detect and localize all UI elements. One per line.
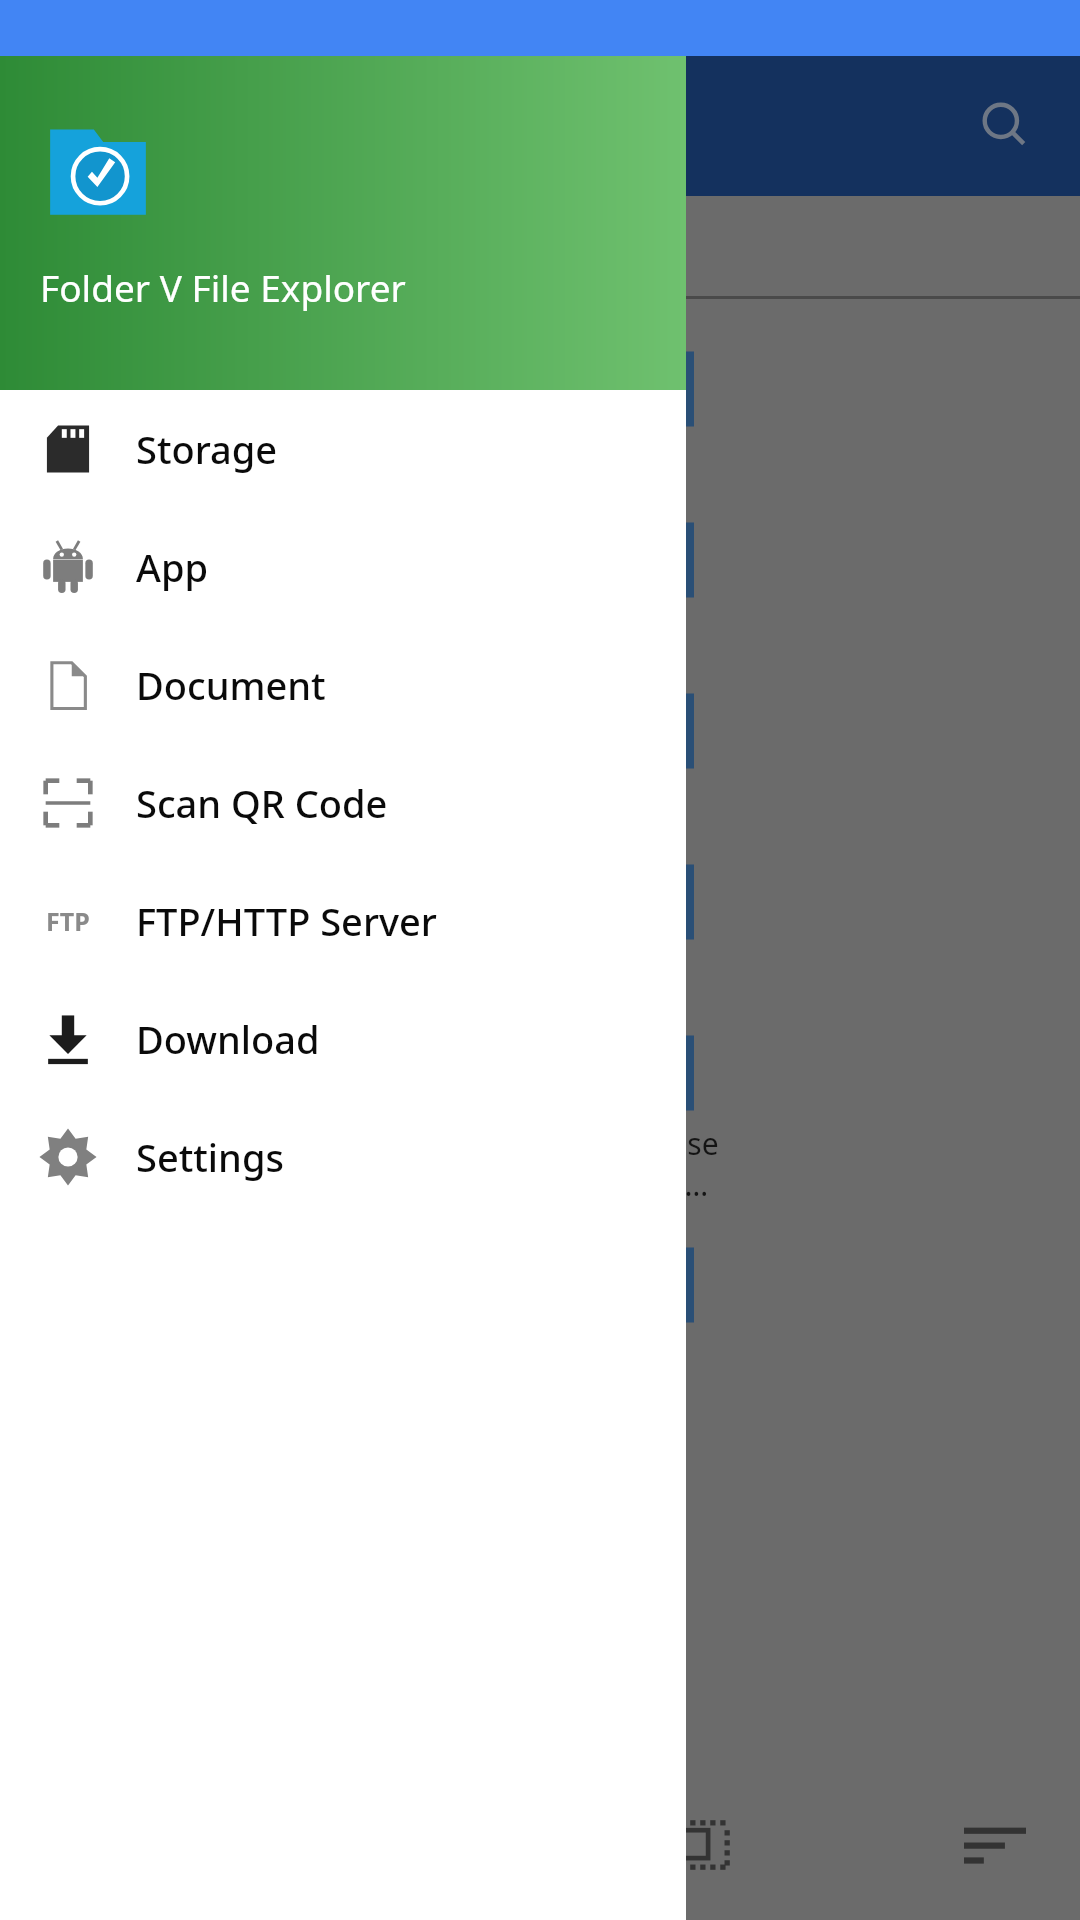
staticText: Storage [136,423,278,475]
button[interactable]: FTP [0,862,686,980]
button[interactable]: Storage [0,390,686,508]
button[interactable]: Sort [950,1800,1040,1890]
button[interactable]: App [0,508,686,626]
staticText: App [136,541,209,593]
staticText: Folder V File Explorer [40,262,406,312]
staticText: FTP/HTTP Server [136,895,437,947]
staticText: Settings [136,1131,284,1183]
button[interactable]: Document [0,626,686,744]
button[interactable]: Select all [660,1800,750,1890]
button[interactable]: Settings [0,1098,686,1216]
staticText: Document [136,659,326,711]
staticText: FTP [46,904,90,938]
button[interactable]: Download [0,980,686,1098]
staticText: Scan QR Code [136,777,388,829]
staticText: n com.netease .newsreade… [512,1123,719,1205]
staticText: Download [136,1013,320,1065]
button[interactable]: Scan QR Code [0,744,686,862]
button[interactable]: Search [960,81,1050,171]
staticText: Audios [482,223,598,269]
